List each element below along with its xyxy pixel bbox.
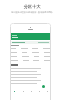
staticText: 每日更新分区排行榜单数据 · 数据来源于网络 — [0, 11, 64, 14]
button[interactable]: Tab 4 — [35, 89, 43, 93]
button[interactable]: Tab 2 — [19, 89, 27, 93]
button[interactable]: 新建 — [42, 85, 45, 88]
staticText: 分区十大 — [0, 4, 64, 9]
button[interactable]: Tab 3 — [27, 89, 35, 93]
button[interactable]: Tab 1 — [10, 89, 19, 93]
button[interactable]: Tab 5 — [43, 89, 51, 93]
